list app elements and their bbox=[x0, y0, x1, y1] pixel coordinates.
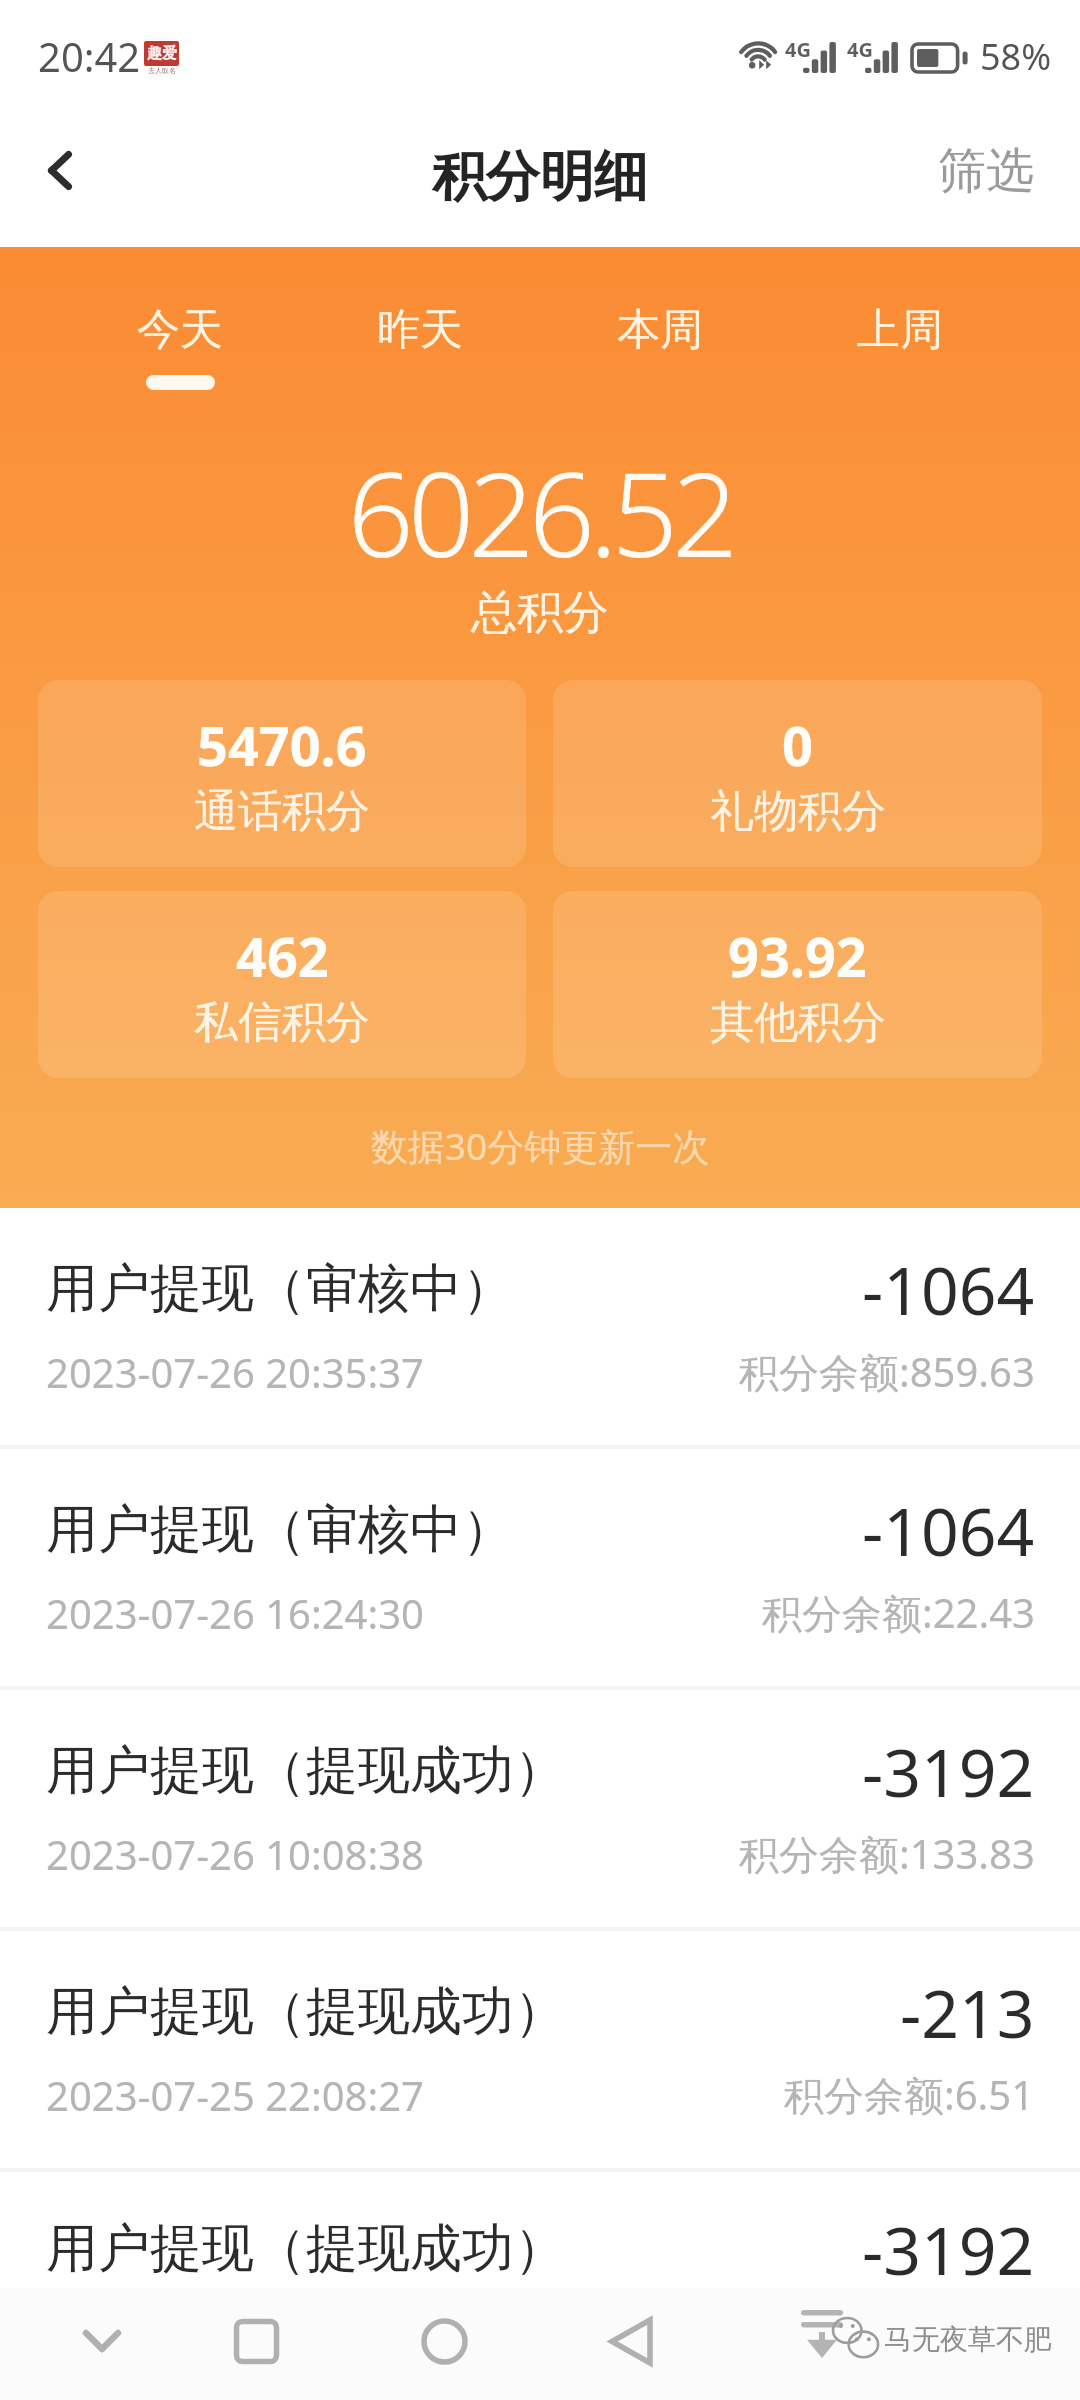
button[interactable]: Home bbox=[404, 2301, 484, 2381]
staticText: 马无夜草不肥 bbox=[884, 2322, 1052, 2357]
staticText: -213 bbox=[900, 1967, 1035, 2057]
staticText: 462 bbox=[236, 919, 329, 993]
staticText: -1064 bbox=[862, 1485, 1035, 1575]
button[interactable]: 462 bbox=[38, 891, 526, 1078]
button[interactable]: 本周 bbox=[540, 303, 780, 375]
staticText: 数据30分钟更新一次 bbox=[0, 1120, 1080, 1171]
staticText: 筛选 bbox=[938, 141, 1034, 201]
button[interactable]: 用户提现（提现成功） bbox=[0, 1931, 1080, 2168]
staticText: 积分余额:133.83 bbox=[739, 1826, 1035, 1881]
staticText: 用户提现（提现成功） bbox=[46, 1979, 566, 2045]
staticText: 用户提现（审核中） bbox=[46, 1256, 514, 1322]
staticText: 去人取名 bbox=[148, 66, 176, 75]
button[interactable]: 今天 bbox=[60, 303, 300, 390]
button[interactable]: 上周 bbox=[780, 303, 1020, 375]
button[interactable]: Back bbox=[16, 126, 104, 214]
staticText: 2023-07-25 18:02:10 bbox=[46, 2305, 424, 2359]
staticText: 2023-07-26 20:35:37 bbox=[46, 1345, 424, 1399]
button[interactable]: 0 bbox=[553, 680, 1042, 867]
staticText: 今天 bbox=[137, 303, 223, 357]
staticText: 其他积分 bbox=[710, 995, 886, 1050]
button[interactable]: 用户提现（提现成功） bbox=[0, 1690, 1080, 1927]
button[interactable]: Hide keyboard bbox=[62, 2301, 142, 2381]
staticText: 20:42 bbox=[38, 29, 141, 83]
button[interactable]: 昨天 bbox=[300, 303, 540, 375]
staticText: 2023-07-25 22:08:27 bbox=[46, 2068, 424, 2122]
staticText: 通话积分 bbox=[194, 784, 370, 839]
staticText: 用户提现（提现成功） bbox=[46, 2216, 566, 2282]
staticText: 4G bbox=[785, 36, 811, 63]
staticText: 本周 bbox=[617, 303, 703, 357]
staticText: 6026.52 bbox=[0, 433, 1080, 591]
staticText: 积分余额:859.63 bbox=[739, 1344, 1035, 1399]
staticText: 93.92 bbox=[728, 919, 867, 993]
staticText: 私信积分 bbox=[194, 995, 370, 1050]
staticText: 积分余额:6.51 bbox=[784, 2067, 1035, 2122]
button[interactable]: 筛选 bbox=[914, 134, 1080, 218]
staticText: 5470.6 bbox=[197, 708, 367, 782]
staticText: 昨天 bbox=[377, 303, 463, 357]
staticText: 总积分 bbox=[0, 584, 1080, 642]
button[interactable]: 93.92 bbox=[553, 891, 1042, 1078]
staticText: -3192 bbox=[862, 2204, 1035, 2294]
button[interactable]: 用户提现（审核中） bbox=[0, 1208, 1080, 1445]
staticText: -1064 bbox=[862, 1244, 1035, 1334]
staticText: 上周 bbox=[857, 303, 943, 357]
staticText: 积分明细 bbox=[432, 143, 648, 211]
button[interactable]: 用户提现（审核中） bbox=[0, 1449, 1080, 1686]
button[interactable]: Back bbox=[591, 2301, 671, 2381]
button[interactable]: 用户提现（提现成功） bbox=[0, 2172, 1080, 2400]
staticText: 趣爱 bbox=[147, 44, 177, 63]
staticText: 用户提现（提现成功） bbox=[46, 1738, 566, 1804]
staticText: 礼物积分 bbox=[710, 784, 886, 839]
staticText: 0 bbox=[782, 708, 813, 782]
staticText: 2023-07-26 16:24:30 bbox=[46, 1586, 424, 1640]
staticText: 用户提现（审核中） bbox=[46, 1497, 514, 1563]
button[interactable]: Recent apps bbox=[216, 2301, 296, 2381]
staticText: 积分余额:22.43 bbox=[762, 1585, 1035, 1640]
staticText: -3192 bbox=[862, 1726, 1035, 1816]
staticText: 4G bbox=[847, 36, 873, 63]
button[interactable]: 5470.6 bbox=[38, 680, 526, 867]
staticText: 58% bbox=[980, 32, 1052, 81]
staticText: 2023-07-26 10:08:38 bbox=[46, 1827, 424, 1881]
staticText: 积分余额:90.2 bbox=[784, 2304, 1035, 2359]
